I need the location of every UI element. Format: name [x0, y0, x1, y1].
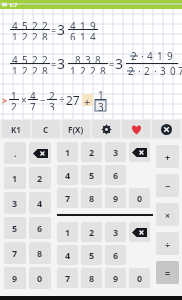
button[interactable]: 9: [4, 267, 26, 289]
button[interactable]: 3: [4, 192, 26, 214]
button[interactable]: ×: [156, 203, 179, 226]
button[interactable]: 6: [105, 165, 126, 185]
button[interactable]: 5: [4, 217, 26, 239]
button[interactable]: K1: [2, 120, 30, 138]
button[interactable]: Backspace: [29, 142, 51, 164]
button[interactable]: .: [4, 142, 26, 164]
staticText: 4: [70, 19, 76, 29]
staticText: K1: [11, 124, 21, 135]
button[interactable]: 8: [81, 188, 102, 208]
button[interactable]: −: [156, 174, 179, 197]
button[interactable]: 3: [105, 222, 126, 242]
other: Backspace: [132, 228, 147, 237]
button[interactable]: 6: [29, 217, 51, 239]
staticText: 0: [170, 64, 176, 78]
staticText: ÷: [165, 238, 171, 250]
button[interactable]: 5: [81, 245, 102, 265]
button[interactable]: 2: [81, 222, 102, 242]
staticText: 2: [32, 30, 38, 40]
other: Favorite: [131, 124, 142, 135]
button[interactable]: 7: [57, 268, 78, 288]
staticText: 6: [113, 169, 119, 181]
staticText: 5: [89, 169, 95, 181]
button[interactable]: 0: [129, 188, 150, 208]
button[interactable]: C: [32, 120, 60, 138]
button[interactable]: =: [156, 261, 179, 284]
button[interactable]: F(X): [62, 120, 90, 138]
button[interactable]: 4: [57, 165, 78, 185]
button[interactable]: 7: [57, 188, 78, 208]
staticText: 8: [42, 64, 48, 74]
staticText: 4: [65, 169, 71, 181]
button[interactable]: ÷: [156, 232, 179, 255]
button[interactable]: 5: [81, 165, 102, 185]
staticText: −: [40, 93, 46, 107]
staticText: 1: [157, 49, 163, 63]
button[interactable]: 1: [57, 222, 78, 242]
staticText: .: [14, 147, 17, 159]
button[interactable]: Close: [152, 120, 180, 138]
staticText: ·: [154, 64, 157, 78]
staticText: 2: [89, 146, 95, 158]
button[interactable]: 2: [81, 142, 102, 162]
staticText: 1:7: [9, 1, 18, 9]
staticText: 27: [66, 92, 80, 108]
staticText: C: [43, 124, 49, 135]
button[interactable]: 0: [29, 267, 51, 289]
staticText: 4: [12, 53, 18, 63]
button[interactable]: 6: [105, 245, 126, 265]
button[interactable]: 1: [57, 142, 78, 162]
staticText: 2: [144, 64, 150, 78]
staticText: 8: [89, 192, 95, 204]
staticText: 2: [32, 64, 38, 74]
staticText: 2: [80, 64, 86, 74]
staticText: 2: [11, 100, 17, 110]
other: Backspace: [132, 148, 147, 157]
staticText: 8: [37, 247, 43, 259]
staticText: 1: [70, 64, 76, 74]
button[interactable]: 3: [105, 142, 126, 162]
button[interactable]: Favorite: [122, 120, 150, 138]
staticText: 8: [95, 53, 101, 63]
staticText: ·: [141, 49, 144, 63]
staticText: =: [109, 58, 115, 70]
button[interactable]: 4: [29, 192, 51, 214]
button[interactable]: 8: [29, 242, 51, 264]
staticText: 8: [100, 64, 106, 74]
button[interactable]: 7: [4, 242, 26, 264]
button[interactable]: 8: [81, 268, 102, 288]
staticText: 1: [12, 172, 18, 184]
button[interactable]: Settings: [92, 120, 120, 138]
button[interactable]: 9: [105, 268, 126, 288]
other: Backspace: [33, 149, 48, 158]
staticText: 0: [137, 272, 143, 284]
staticText: 9: [167, 49, 173, 63]
staticText: 2: [42, 19, 48, 29]
staticText: 2: [37, 172, 43, 184]
staticText: 1: [65, 146, 71, 158]
staticText: 3: [98, 100, 104, 111]
staticText: 4: [37, 197, 43, 209]
button[interactable]: Backspace: [129, 222, 150, 242]
staticText: ·: [138, 64, 141, 78]
staticText: 4: [90, 30, 96, 40]
staticText: 1: [12, 64, 18, 74]
button[interactable]: +: [156, 145, 179, 168]
staticText: 4: [65, 249, 71, 261]
staticText: 6: [37, 222, 43, 234]
staticText: 4: [12, 19, 18, 29]
button[interactable]: 2: [29, 167, 51, 189]
staticText: 1: [80, 30, 86, 40]
staticText: >: [2, 94, 8, 106]
staticText: 4: [30, 89, 36, 99]
button[interactable]: 4: [57, 245, 78, 265]
button[interactable]: 9: [105, 188, 126, 208]
staticText: 1: [80, 19, 86, 29]
button[interactable]: 0: [129, 268, 150, 288]
staticText: 3: [113, 146, 119, 158]
staticText: ÷: [59, 93, 65, 107]
button[interactable]: Backspace: [129, 142, 150, 162]
staticText: 2: [89, 226, 95, 238]
button[interactable]: 1: [4, 167, 26, 189]
staticText: 2: [22, 64, 28, 74]
